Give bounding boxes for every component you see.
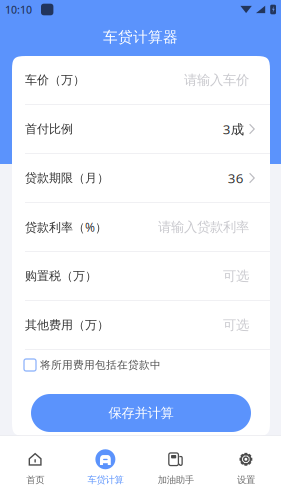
staticText: 贷款利率（%） bbox=[25, 219, 107, 235]
staticText: 请输入车价 bbox=[184, 72, 249, 88]
button[interactable]: 首付比例 bbox=[12, 105, 270, 154]
staticText: 其他费用（万） bbox=[25, 318, 109, 332]
staticText: 购置税（万） bbox=[25, 269, 97, 283]
button[interactable]: 车贷计算 bbox=[70, 438, 140, 498]
staticText: 可选 bbox=[223, 268, 249, 284]
button[interactable]: 贷款期限（月） bbox=[12, 154, 270, 203]
staticText: 保存并计算 bbox=[108, 405, 173, 421]
staticText: 加油助手 bbox=[158, 474, 194, 486]
staticText: 设置 bbox=[237, 474, 255, 486]
button[interactable]: 车价（万） bbox=[12, 56, 270, 105]
staticText: 首付比例 bbox=[25, 122, 73, 136]
staticText: 车贷计算 bbox=[87, 474, 123, 486]
button[interactable]: 加油助手 bbox=[140, 438, 211, 498]
staticText: 可选 bbox=[223, 317, 249, 333]
button[interactable]: 设置 bbox=[211, 438, 281, 498]
button[interactable]: 首页 bbox=[0, 438, 70, 498]
button[interactable]: 购置税（万） bbox=[12, 252, 270, 301]
button[interactable]: 保存并计算 bbox=[31, 394, 251, 432]
staticText: 36 bbox=[228, 169, 244, 187]
staticText: 车贷计算器 bbox=[103, 28, 178, 46]
button[interactable]: 将所用费用包括在贷款中 bbox=[12, 350, 270, 380]
staticText: 10:10 bbox=[5, 2, 32, 17]
staticText: 3成 bbox=[223, 120, 244, 138]
staticText: 贷款期限（月） bbox=[25, 171, 109, 185]
staticText: 请输入贷款利率 bbox=[158, 219, 249, 235]
button[interactable]: 其他费用（万） bbox=[12, 301, 270, 350]
staticText: 将所用费用包括在贷款中 bbox=[40, 358, 161, 371]
button[interactable]: 贷款利率（%） bbox=[12, 203, 270, 252]
staticText: 车价（万） bbox=[25, 73, 85, 87]
staticText: 首页 bbox=[26, 474, 44, 486]
